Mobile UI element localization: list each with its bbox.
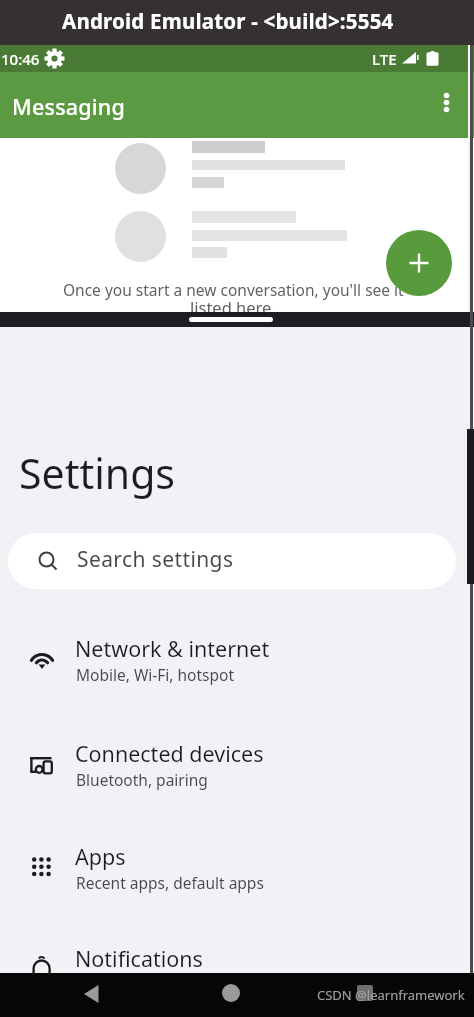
- staticText: CSDN @learnframework: [317, 986, 465, 1004]
- staticText: 10:46: [1, 49, 40, 69]
- staticText: Network & internet: [75, 634, 270, 663]
- staticText: Once you start a new conversation, you'l…: [63, 279, 404, 300]
- button[interactable]: [357, 985, 373, 1001]
- staticText: Recent apps, default apps: [76, 872, 264, 893]
- button[interactable]: Notifications: [0, 934, 474, 1017]
- button[interactable]: [386, 230, 452, 296]
- button[interactable]: Connected devices: [0, 729, 474, 821]
- staticText: listed here.: [190, 296, 276, 318]
- staticText: Bluetooth, pairing: [76, 769, 208, 790]
- button[interactable]: [222, 984, 240, 1002]
- staticText: Notifications: [75, 944, 203, 973]
- staticText: Connected devices: [75, 739, 264, 768]
- staticText: LTE: [372, 49, 397, 69]
- staticText: Android Emulator - <build>:5554: [62, 7, 394, 35]
- button[interactable]: Network & internet: [0, 624, 474, 716]
- staticText: Apps: [75, 842, 126, 871]
- staticText: Search settings: [77, 545, 234, 574]
- staticText: Mobile, Wi-Fi, hotspot: [76, 664, 235, 685]
- button[interactable]: Search settings: [8, 533, 456, 589]
- button[interactable]: [439, 92, 454, 117]
- button[interactable]: [83, 985, 100, 1003]
- staticText: Messaging: [12, 92, 126, 121]
- staticText: Settings: [19, 445, 176, 501]
- button[interactable]: Apps: [0, 832, 474, 924]
